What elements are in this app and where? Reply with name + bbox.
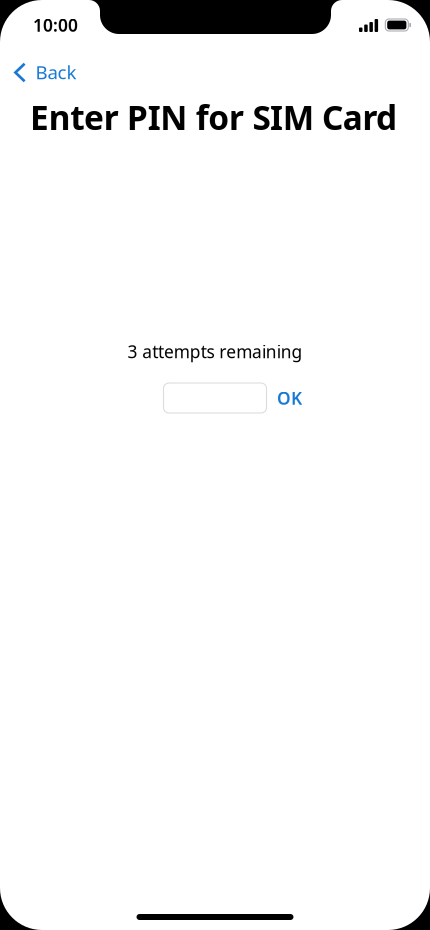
staticText: OK [277, 386, 302, 409]
staticText: 10:00 [33, 13, 78, 36]
button[interactable]: PIN [163, 383, 266, 413]
staticText: 3 attempts remaining [127, 340, 302, 363]
button[interactable]: OK [272, 383, 307, 413]
staticText: Back [35, 60, 76, 84]
staticText: Enter PIN for SIM Card [30, 95, 397, 139]
button[interactable]: Back [0, 50, 86, 89]
